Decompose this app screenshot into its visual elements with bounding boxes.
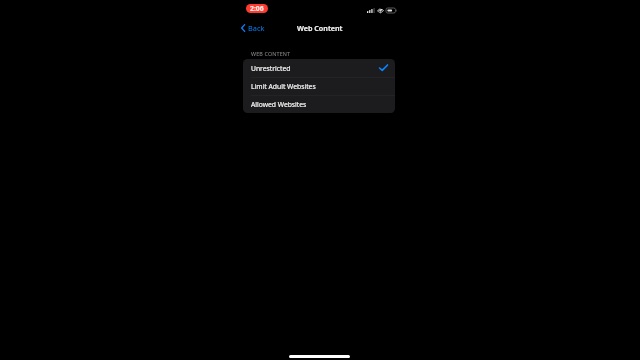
staticText: Limit Adult Websites (251, 82, 316, 91)
staticText: WEB CONTENT (251, 50, 291, 57)
other: Cellular signal, Wi-Fi, battery (367, 8, 397, 13)
button[interactable]: Allowed Websites (243, 95, 395, 113)
staticText: Allowed Websites (251, 100, 307, 109)
button[interactable]: Recording timer 2:06 (246, 4, 268, 13)
staticText: Back (248, 23, 265, 33)
button[interactable]: Unrestricted (243, 59, 395, 77)
button[interactable]: Back to Content Restrictions (239, 22, 268, 33)
staticText: 2:06 (250, 4, 264, 13)
button[interactable]: Limit Adult Websites (243, 77, 395, 95)
other: Selected (379, 64, 388, 72)
staticText: Web Content (297, 23, 343, 33)
staticText: Unrestricted (251, 64, 291, 73)
